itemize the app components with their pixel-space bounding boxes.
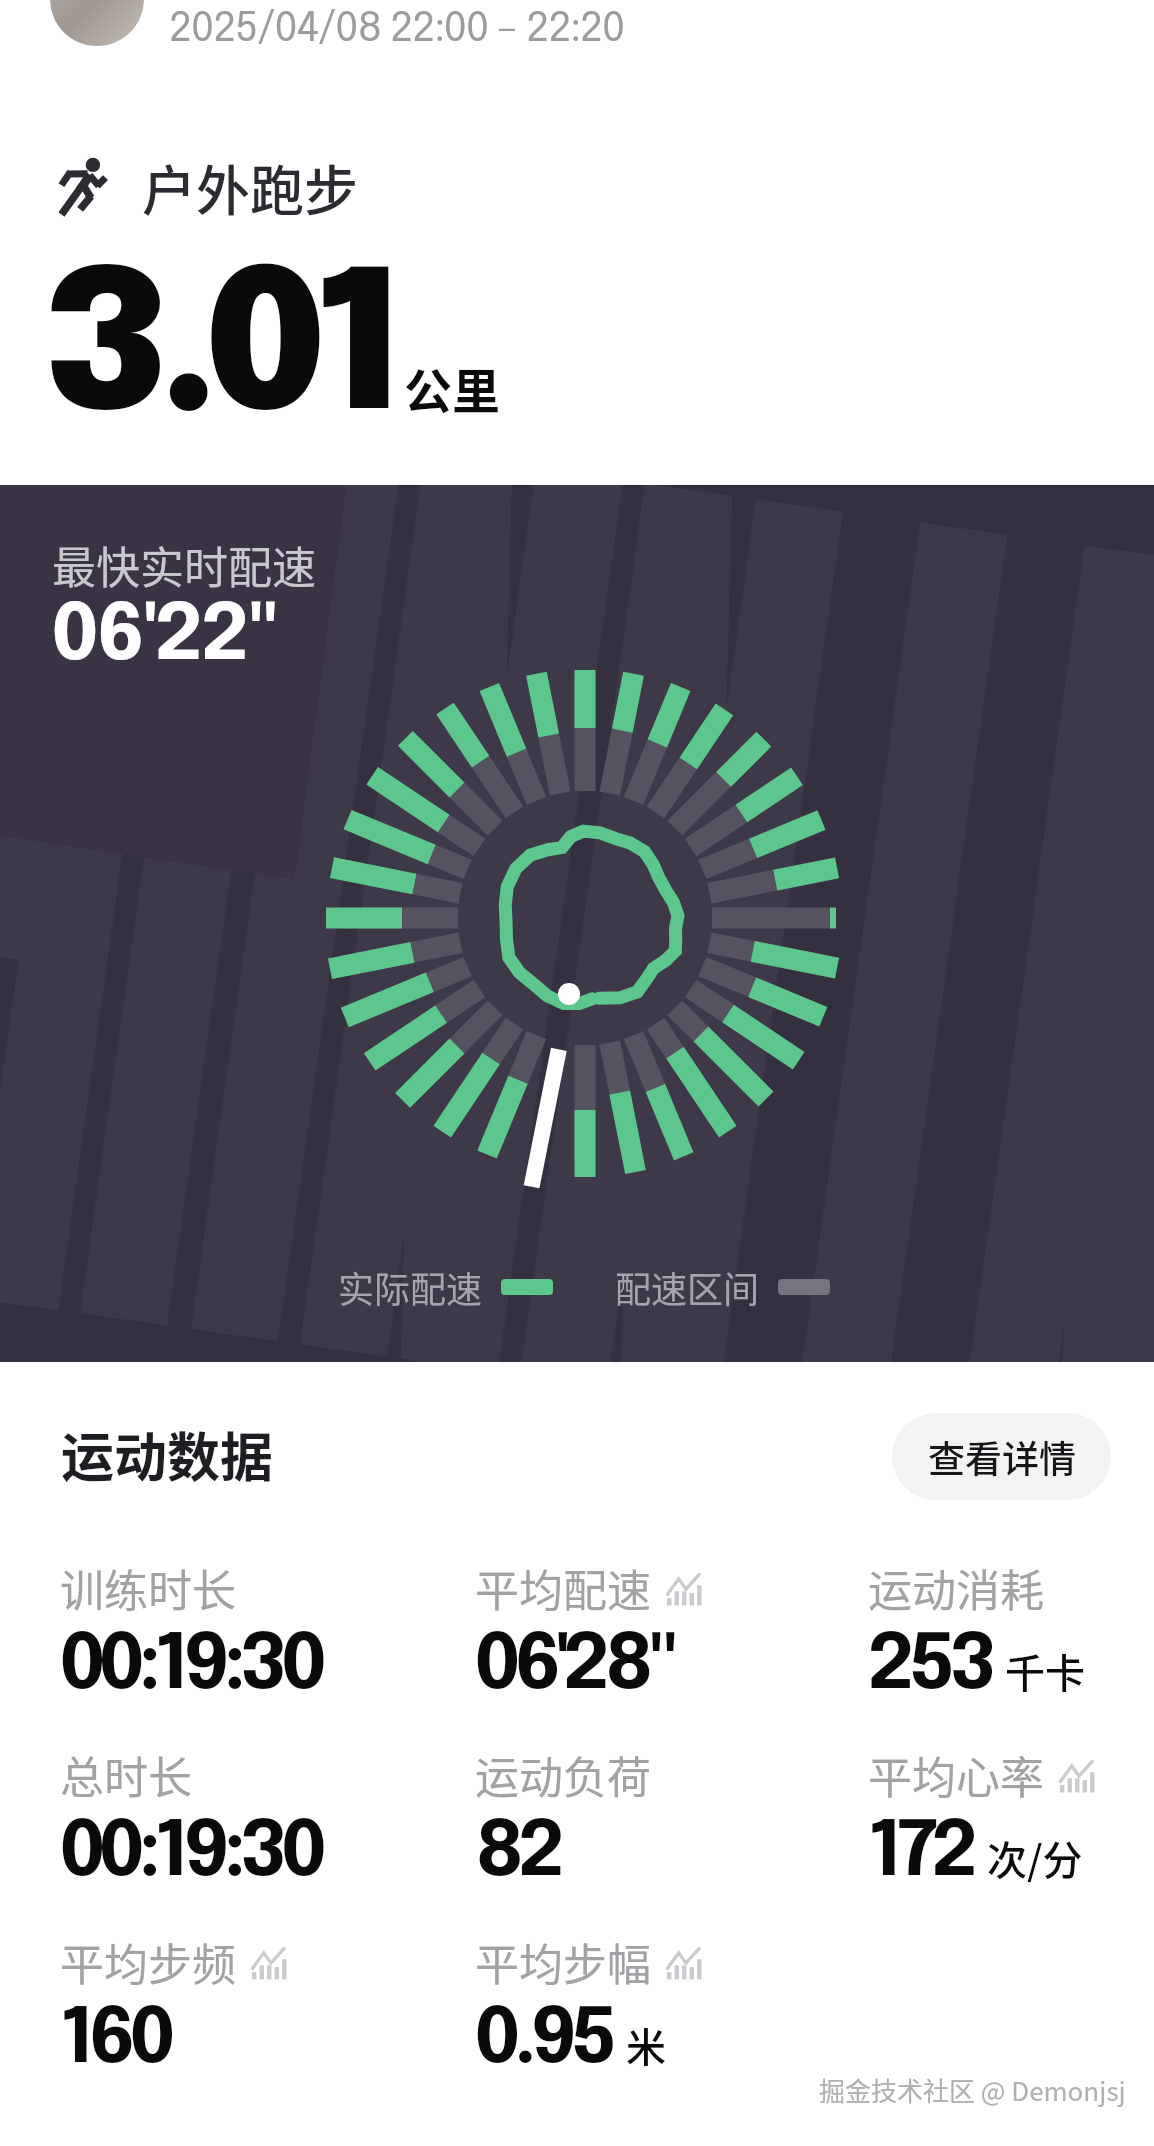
button[interactable]: User avatar <box>50 0 144 46</box>
staticText: 运动消耗 <box>868 1556 1044 1620</box>
staticText: 00:19:30 <box>60 1628 321 1706</box>
staticText: 次/分 <box>987 1829 1083 1887</box>
staticText: 160 <box>60 2002 170 2080</box>
staticText: 运动负荷 <box>475 1743 651 1807</box>
staticText: 配速区间 <box>615 1261 760 1313</box>
staticText: 2025/04/08 22:00 – 22:20 <box>169 9 625 51</box>
staticText: 掘金技术社区 @ Demonjsj <box>819 2071 1126 2109</box>
staticText: 06'28" <box>475 1628 674 1706</box>
staticText: 总时长 <box>60 1743 192 1807</box>
button[interactable]: 查看详情 <box>892 1413 1111 1500</box>
staticText: 最快实时配速 <box>52 533 316 597</box>
staticText: 训练时长 <box>60 1556 236 1620</box>
staticText: 公里 <box>404 353 501 423</box>
staticText: 253 <box>868 1628 991 1706</box>
staticText: 查看详情 <box>928 1430 1076 1484</box>
staticText: 3.01 <box>44 256 394 453</box>
staticText: 千卡 <box>1005 1642 1085 1700</box>
staticText: 0.95 <box>475 2002 612 2080</box>
staticText: 00:19:30 <box>60 1815 321 1893</box>
staticText: 米 <box>626 2016 666 2074</box>
staticText: 户外跑步 <box>142 148 358 226</box>
staticText: 平均配速 <box>475 1556 651 1620</box>
staticText: 平均步频 <box>60 1930 236 1994</box>
staticText: 82 <box>475 1815 560 1893</box>
staticText: 实际配速 <box>338 1261 483 1313</box>
staticText: 06'22" <box>52 597 279 677</box>
staticText: 172 <box>868 1815 973 1893</box>
staticText: 运动数据 <box>61 1416 273 1493</box>
staticText: 平均步幅 <box>475 1930 651 1994</box>
staticText: 平均心率 <box>868 1743 1044 1807</box>
